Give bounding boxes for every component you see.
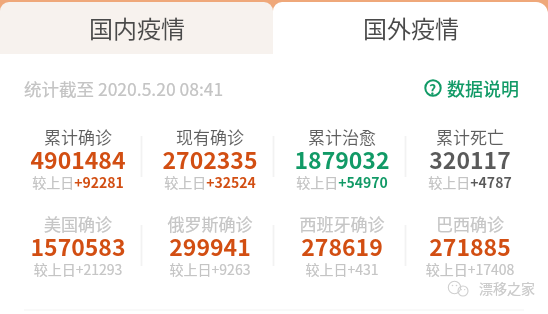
- staticText: 数据说明: [447, 75, 519, 101]
- staticText: 较上日+431: [276, 259, 408, 279]
- other: Data explanation: [424, 79, 442, 97]
- staticText: 俄罗斯确诊: [144, 211, 276, 236]
- button[interactable]: [12, 207, 144, 275]
- button[interactable]: [404, 207, 536, 275]
- button[interactable]: Data explanation: [424, 75, 519, 101]
- staticText: 较上日+54970: [276, 172, 408, 192]
- staticText: 较上日+9263: [144, 259, 276, 279]
- staticText: 1570583: [12, 229, 144, 262]
- button[interactable]: [404, 120, 536, 188]
- staticText: 较上日+21293: [12, 259, 144, 279]
- staticText: 1879032: [276, 142, 408, 175]
- button[interactable]: 国外疫情: [273, 2, 548, 56]
- button[interactable]: [144, 120, 276, 188]
- staticText: 漂移之家: [479, 278, 535, 298]
- button[interactable]: [144, 207, 276, 275]
- staticText: 278619: [276, 229, 408, 262]
- staticText: 美国确诊: [12, 211, 144, 236]
- staticText: 4901484: [12, 142, 144, 175]
- staticText: 累计治愈: [276, 124, 408, 149]
- button[interactable]: [276, 120, 408, 188]
- staticText: 国内疫情: [89, 10, 185, 45]
- staticText: 现有确诊: [144, 124, 276, 149]
- staticText: 271885: [404, 229, 536, 262]
- staticText: 较上日+4787: [404, 172, 536, 192]
- staticText: 较上日+32524: [144, 172, 276, 192]
- staticText: 2702335: [144, 142, 276, 175]
- staticText: 西班牙确诊: [276, 211, 408, 236]
- button[interactable]: 国内疫情: [0, 2, 273, 56]
- staticText: 巴西确诊: [404, 211, 536, 236]
- staticText: 299941: [144, 229, 276, 262]
- button[interactable]: [276, 207, 408, 275]
- staticText: 国外疫情: [363, 10, 459, 45]
- staticText: 累计死亡: [404, 124, 536, 149]
- staticText: 统计截至 2020.5.20 08:41: [24, 76, 224, 101]
- staticText: ?: [429, 79, 437, 97]
- staticText: 累计确诊: [12, 124, 144, 149]
- staticText: 较上日+17408: [404, 259, 536, 279]
- staticText: 较上日+92281: [12, 172, 144, 192]
- button[interactable]: [12, 120, 144, 188]
- staticText: 320117: [404, 142, 536, 175]
